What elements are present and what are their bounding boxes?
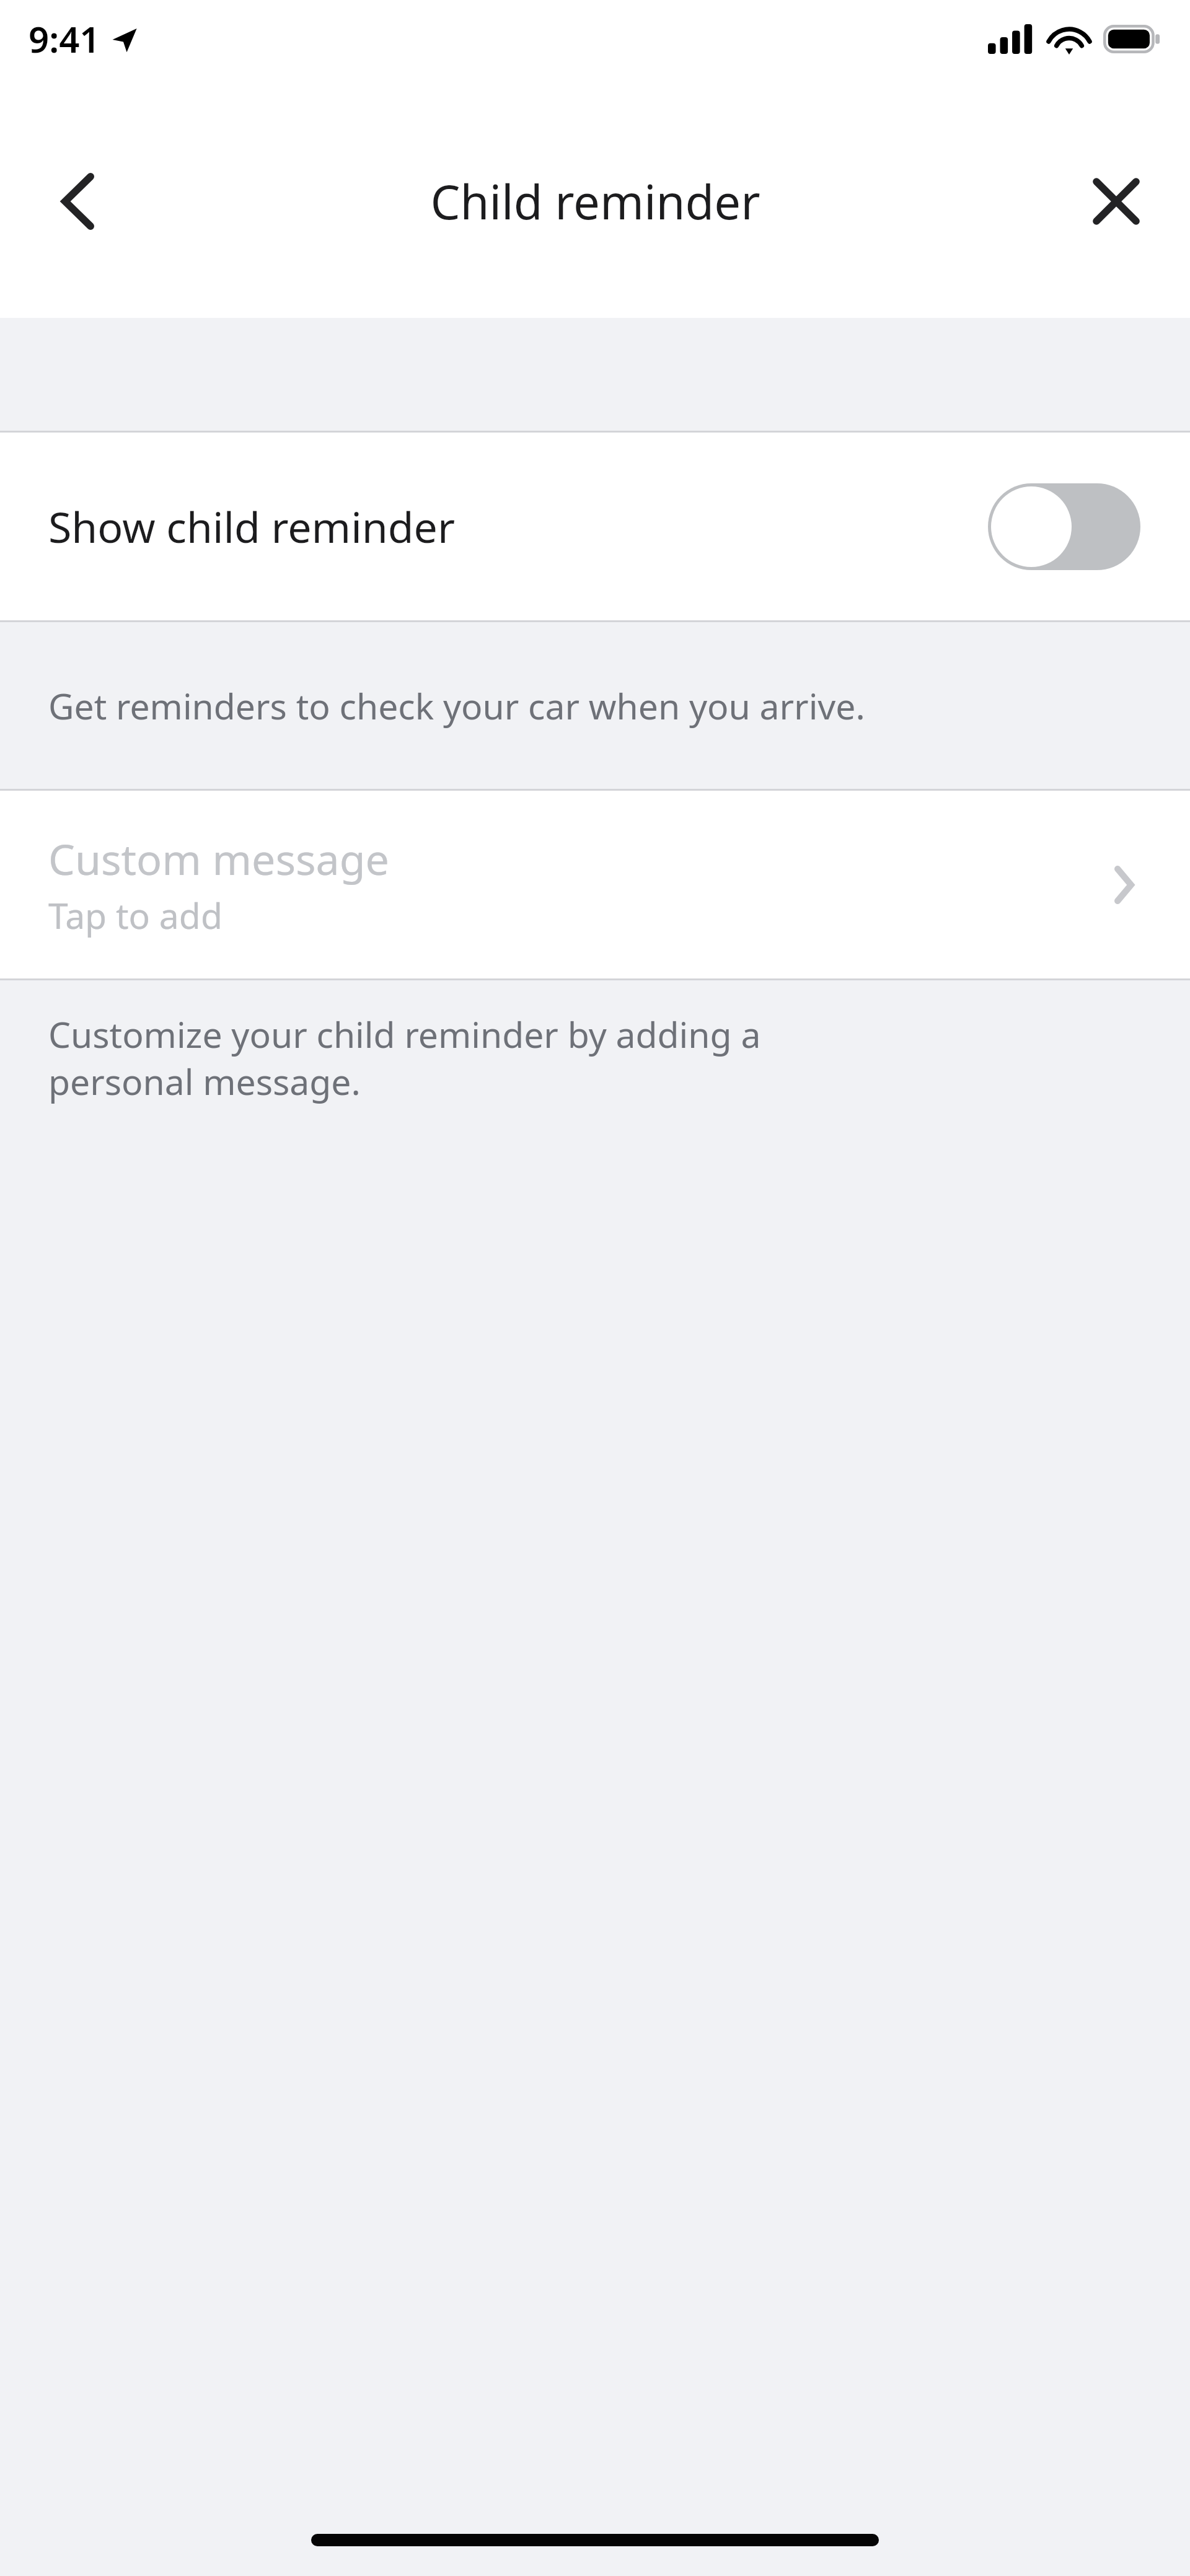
button[interactable]: Show child reminder toggle bbox=[988, 483, 1140, 570]
button[interactable]: Back bbox=[30, 154, 125, 249]
button[interactable]: Custom message bbox=[0, 791, 1190, 978]
staticText: Custom message bbox=[48, 830, 389, 887]
staticText: Customize your child reminder by adding … bbox=[48, 1010, 761, 1105]
staticText: Show child reminder bbox=[48, 498, 455, 555]
button[interactable]: Show child reminder bbox=[0, 433, 1190, 620]
staticText: 9:41 bbox=[29, 14, 100, 63]
staticText: Tap to add bbox=[48, 891, 223, 939]
button[interactable]: Close bbox=[1069, 154, 1164, 249]
staticText: Get reminders to check your car when you… bbox=[48, 682, 865, 730]
staticText: Child reminder bbox=[430, 169, 760, 234]
